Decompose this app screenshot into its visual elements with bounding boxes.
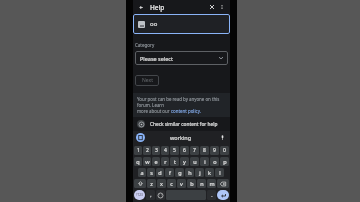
button[interactable]: u (190, 157, 199, 166)
staticText: c (170, 180, 173, 187)
button[interactable]: j (195, 168, 204, 177)
staticText: oo (150, 20, 158, 28)
button[interactable]: 9 (210, 146, 219, 155)
staticText: y (183, 158, 186, 165)
button[interactable]: Back (136, 2, 146, 12)
staticText: x (160, 180, 163, 187)
button[interactable]: 4 (161, 146, 169, 155)
staticText: . (211, 192, 213, 199)
staticText: , (150, 192, 152, 199)
staticText: more about our (137, 108, 171, 114)
button[interactable]: oo (133, 14, 230, 34)
button[interactable]: Switch language (134, 190, 145, 200)
button[interactable]: b (187, 179, 196, 188)
staticText: s (150, 169, 153, 176)
staticText: v (180, 180, 183, 187)
staticText: 0 (223, 147, 226, 154)
button[interactable]: z (147, 179, 156, 188)
staticText: Please select (140, 55, 173, 62)
button[interactable]: Shift (134, 179, 146, 188)
staticText: Check similar content for help (150, 121, 218, 128)
button[interactable]: 6 (180, 146, 189, 155)
button[interactable]: k (205, 168, 214, 177)
button[interactable]: 7 (190, 146, 199, 155)
button[interactable]: Clipboard (136, 133, 145, 142)
staticText: Next (142, 77, 153, 84)
button[interactable]: Backspace (217, 179, 229, 188)
staticText: 8 (203, 147, 206, 154)
staticText: 7 (193, 147, 196, 154)
staticText: Category (135, 42, 155, 48)
button[interactable]: s (147, 168, 155, 177)
button[interactable]: v (177, 179, 186, 188)
staticText: q (136, 158, 140, 165)
button[interactable]: 0 (220, 146, 229, 155)
button[interactable]: f (165, 168, 174, 177)
staticText: 2 (146, 147, 149, 154)
staticText: i (204, 158, 206, 165)
button[interactable]: n (197, 179, 206, 188)
staticText: working (170, 134, 192, 141)
staticText: e (154, 158, 158, 165)
button[interactable]: content policy. (171, 108, 201, 114)
staticText: g (178, 169, 182, 176)
staticText: j (199, 169, 201, 176)
button[interactable]: a (138, 168, 146, 177)
button[interactable]: 8 (200, 146, 209, 155)
staticText: t (174, 158, 176, 165)
button[interactable]: o (210, 157, 219, 166)
staticText: l (219, 169, 221, 176)
button[interactable]: l (215, 168, 224, 177)
staticText: 6 (183, 147, 186, 154)
staticText: m (209, 180, 215, 187)
button[interactable]: h (185, 168, 194, 177)
button[interactable]: 1 (134, 146, 142, 155)
button[interactable]: m (207, 179, 216, 188)
staticText: f (169, 169, 171, 176)
staticText: Help (150, 3, 165, 12)
button[interactable]: Close (207, 2, 217, 12)
button[interactable]: w (143, 157, 151, 166)
button[interactable]: 2 (143, 146, 151, 155)
button[interactable]: Emoji (156, 190, 165, 200)
staticText: n (200, 180, 204, 187)
button[interactable]: 3 (152, 146, 160, 155)
staticText: b (190, 180, 194, 187)
button[interactable]: x (157, 179, 166, 188)
button[interactable]: c (167, 179, 176, 188)
staticText: w (145, 158, 150, 165)
button[interactable]: Please select (135, 51, 228, 65)
button[interactable]: g (175, 168, 184, 177)
button[interactable]: i (200, 157, 209, 166)
staticText: r (164, 158, 167, 165)
button[interactable]: p (220, 157, 229, 166)
button[interactable]: Voice input (218, 133, 227, 142)
button[interactable]: , (146, 190, 155, 200)
button[interactable]: t (170, 157, 179, 166)
button[interactable]: More options (217, 2, 227, 12)
staticText: d (158, 169, 162, 176)
button[interactable]: Enter (217, 190, 229, 200)
staticText: 3 (155, 147, 158, 154)
staticText: h (188, 169, 192, 176)
staticText: 1 (137, 147, 140, 154)
button[interactable]: . (207, 190, 216, 200)
staticText: ?123 (136, 193, 143, 197)
staticText: a (140, 169, 144, 176)
button[interactable]: r (161, 157, 169, 166)
staticText: 4 (164, 147, 167, 154)
staticText: p (223, 158, 227, 165)
button[interactable]: e (152, 157, 160, 166)
button[interactable]: y (180, 157, 189, 166)
staticText: u (193, 158, 197, 165)
staticText: o (213, 158, 217, 165)
button[interactable]: q (134, 157, 142, 166)
staticText: 5 (173, 147, 176, 154)
button[interactable]: Next (135, 75, 159, 86)
button[interactable]: 5 (170, 146, 179, 155)
button[interactable]: d (156, 168, 164, 177)
staticText: Your post can be read by anyone on this … (137, 96, 226, 108)
button[interactable]: Check similar content for help (137, 117, 226, 131)
staticText: z (150, 180, 153, 187)
